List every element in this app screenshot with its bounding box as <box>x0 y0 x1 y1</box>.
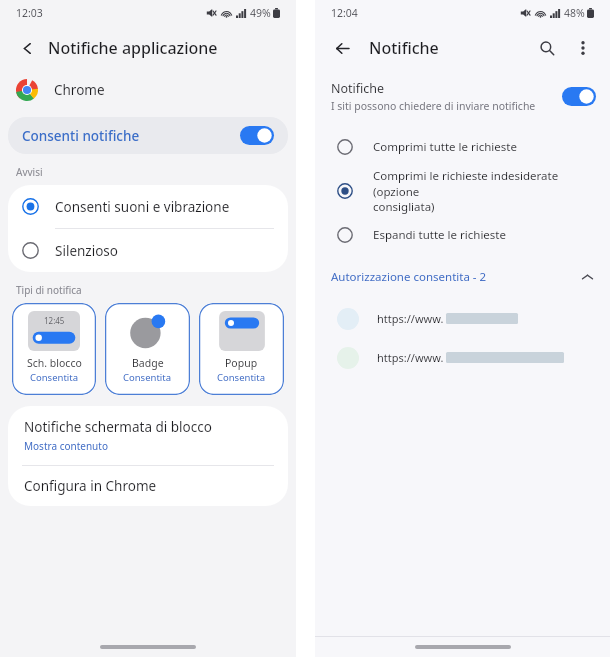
staticText: 49% <box>250 6 271 20</box>
staticText: Comprimi le richieste indesiderate (opzi… <box>373 168 592 214</box>
staticText: Notifiche schermata di blocco <box>24 418 212 436</box>
staticText: 48% <box>564 6 585 20</box>
button[interactable]: Consenti notifiche <box>8 117 288 154</box>
button[interactable]: 12:45 <box>12 303 96 395</box>
button[interactable]: Badge <box>105 303 190 395</box>
staticText: Badge <box>132 356 164 370</box>
button[interactable]: More options <box>568 33 598 63</box>
staticText: 12:45 <box>44 315 65 326</box>
staticText: https://www. <box>377 311 444 326</box>
button[interactable]: Back <box>12 33 42 63</box>
staticText: Notifiche <box>369 37 439 59</box>
staticText: Configura in Chrome <box>24 477 157 495</box>
button[interactable]: Notifiche schermata di blocco <box>8 406 288 465</box>
button[interactable]: Consenti suoni e vibrazione <box>8 185 288 228</box>
staticText: Consenti suoni e vibrazione <box>55 198 230 216</box>
staticText: Consentita <box>217 371 266 384</box>
staticText: I siti possono chiedere di inviare notif… <box>331 99 536 113</box>
staticText: Tipi di notifica <box>16 283 82 297</box>
button[interactable]: Silenzioso <box>8 229 288 272</box>
staticText: Consentita <box>123 371 172 384</box>
button[interactable]: Comprimi tutte le richieste <box>315 127 610 167</box>
button[interactable]: Autorizzazione consentita - 2 <box>315 263 610 291</box>
button[interactable]: https://www. <box>315 299 610 338</box>
staticText: Sch. blocco <box>27 356 82 370</box>
button[interactable]: Search <box>532 33 562 63</box>
button[interactable]: Chrome <box>0 70 296 110</box>
staticText: Espandi tutte le richieste <box>373 227 506 243</box>
staticText: Consenti notifiche <box>22 127 140 145</box>
staticText: Notifiche <box>331 80 385 97</box>
staticText: Chrome <box>54 81 105 99</box>
button[interactable]: Notifiche <box>315 80 610 113</box>
staticText: Avvisi <box>16 165 43 179</box>
button[interactable]: Configura in Chrome <box>8 466 288 506</box>
button[interactable]: Back <box>327 33 357 63</box>
staticText: 12:03 <box>16 6 43 20</box>
button[interactable]: https://www. <box>315 338 610 377</box>
button[interactable]: Popup <box>199 303 284 395</box>
staticText: Comprimi tutte le richieste <box>373 139 517 155</box>
button[interactable]: Comprimi le richieste indesiderate (opzi… <box>315 167 610 215</box>
staticText: Consentita <box>30 371 79 384</box>
staticText: Silenzioso <box>55 242 118 260</box>
staticText: Notifiche applicazione <box>48 37 218 59</box>
staticText: 12:04 <box>331 6 358 20</box>
staticText: Mostra contenuto <box>24 439 108 453</box>
staticText: https://www. <box>377 350 444 365</box>
staticText: Autorizzazione consentita - 2 <box>331 269 487 285</box>
button[interactable]: Espandi tutte le richieste <box>315 215 610 255</box>
staticText: Popup <box>225 356 258 370</box>
